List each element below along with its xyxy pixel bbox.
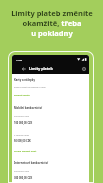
staticText: 50 000,00 CZK <box>14 139 31 142</box>
staticText: Limity plateb změníte okamžitě, třeba u … <box>11 8 93 38</box>
staticText: Souhrnný limit <box>14 115 30 118</box>
staticText: 300 000,00 CZK <box>14 176 33 179</box>
staticText: Mobilní bankovnictví <box>14 106 43 110</box>
staticText: Karty a nálepky <box>14 78 35 82</box>
staticText: Změnu limitů provádíte u karty. <box>14 86 47 89</box>
button[interactable]: Back <box>20 65 27 72</box>
staticText: Souhrnný limit <box>14 170 30 173</box>
staticText: 100 000,00 CZK <box>14 121 33 124</box>
staticText: 12:00 <box>16 58 23 61</box>
staticText: Limity plateb <box>29 66 53 71</box>
staticText: K čerpání dnes <box>14 134 30 137</box>
button[interactable]: Account <box>81 66 87 72</box>
staticText: Internetové bankovnictví <box>14 161 49 165</box>
button[interactable]: Změnit limity <box>14 93 30 96</box>
button[interactable]: Trvale změnit limit <box>14 149 37 152</box>
